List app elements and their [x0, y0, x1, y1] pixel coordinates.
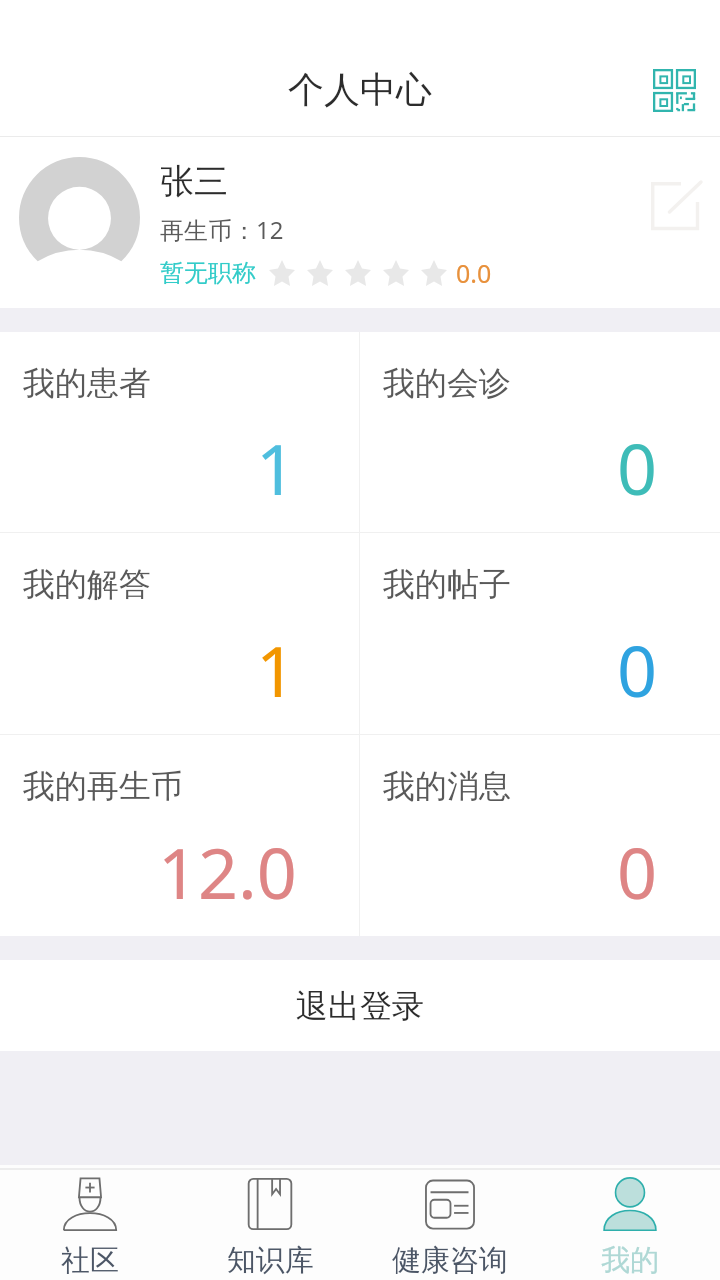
staticText: 社区 — [61, 1242, 119, 1279]
button[interactable]: 我的 — [540, 1170, 720, 1280]
button[interactable]: 我的消息 — [360, 735, 720, 936]
staticText: 1 — [256, 622, 297, 717]
staticText: 个人中心 — [288, 67, 432, 112]
staticText: 0.0 — [456, 256, 492, 290]
button[interactable]: 我的再生币 — [0, 735, 359, 936]
button[interactable]: 健康咨询 — [360, 1170, 540, 1280]
button[interactable]: 我的患者 — [0, 332, 359, 532]
staticText: 我的 — [601, 1242, 659, 1279]
button[interactable]: 社区 — [0, 1170, 180, 1280]
staticText: 张三 — [160, 160, 228, 203]
button[interactable]: Scan QR code — [638, 54, 710, 126]
staticText: 健康咨询 — [392, 1242, 508, 1279]
staticText: 0 — [617, 622, 658, 717]
staticText: 12.0 — [158, 824, 297, 919]
button[interactable]: 退出登录 — [0, 960, 720, 1051]
staticText: 我的再生币 — [23, 766, 183, 806]
button[interactable]: 我的解答 — [0, 533, 359, 734]
button[interactable]: 张三 — [0, 137, 720, 308]
staticText: 0 — [617, 420, 658, 515]
staticText: 再生币：12 — [160, 213, 284, 246]
staticText: 暂无职称 — [160, 258, 256, 288]
staticText: 我的会诊 — [383, 363, 511, 403]
staticText: 0 — [617, 824, 658, 919]
staticText: 退出登录 — [296, 986, 424, 1026]
staticText: 我的解答 — [23, 564, 151, 604]
button[interactable]: 我的会诊 — [360, 332, 720, 532]
staticText: 知识库 — [227, 1242, 314, 1279]
button[interactable]: 我的帖子 — [360, 533, 720, 734]
staticText: 1 — [256, 420, 297, 515]
staticText: 我的患者 — [23, 363, 151, 403]
button[interactable]: 知识库 — [180, 1170, 360, 1280]
button[interactable]: Edit profile — [642, 173, 710, 241]
staticText: 我的消息 — [383, 766, 511, 806]
staticText: 我的帖子 — [383, 564, 511, 604]
